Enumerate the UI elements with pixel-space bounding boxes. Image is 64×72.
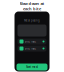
staticText: Start meal <box>26 65 38 69</box>
staticText: Bite rate <box>24 40 36 43</box>
staticText: Bite rate <box>24 47 36 50</box>
staticText: Meal pacing <box>24 19 40 22</box>
staticText: Slow down at <box>19 1 44 6</box>
staticText: each bite <box>23 6 41 11</box>
button[interactable]: Start meal <box>16 63 47 70</box>
